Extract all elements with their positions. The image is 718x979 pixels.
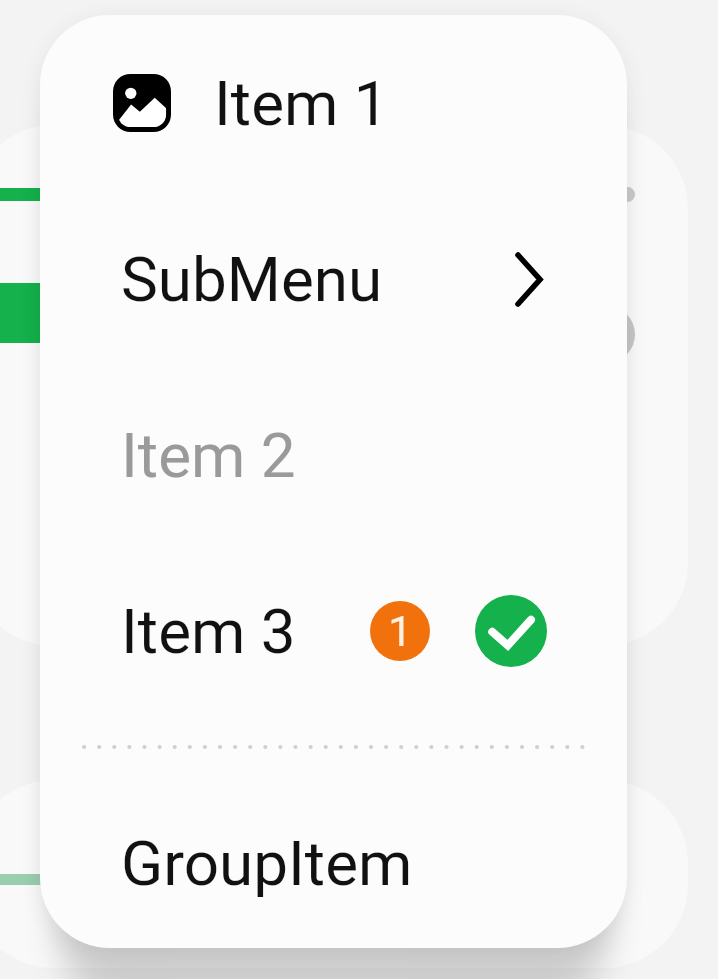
staticText: 1 [388, 607, 412, 656]
button[interactable]: Item 2 [40, 367, 627, 543]
button[interactable]: GroupItem [40, 778, 627, 948]
button[interactable]: Item 1 [40, 15, 627, 191]
staticText: Item 1 [214, 67, 389, 140]
button[interactable]: Item 3 [40, 543, 627, 719]
staticText: Item 3 [121, 595, 296, 668]
button[interactable]: SubMenu [40, 191, 627, 367]
staticText: GroupItem [121, 827, 413, 900]
other: Open submenu [515, 252, 543, 307]
staticText: Item 2 [121, 419, 296, 492]
staticText: SubMenu [121, 243, 383, 316]
